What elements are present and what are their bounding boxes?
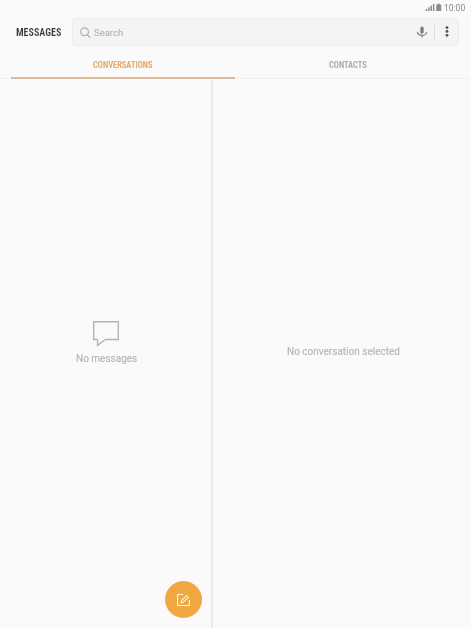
button[interactable]: Search bbox=[72, 18, 459, 46]
button[interactable]: More options bbox=[435, 18, 459, 46]
button[interactable]: New message bbox=[165, 581, 202, 618]
staticText: 10:00 bbox=[444, 3, 466, 13]
button[interactable]: Voice search bbox=[409, 18, 434, 46]
staticText: CONTACTS bbox=[329, 60, 367, 70]
button[interactable]: CONTACTS bbox=[235, 48, 471, 78]
staticText: Search bbox=[94, 27, 124, 38]
staticText: No messages bbox=[76, 353, 138, 365]
staticText: MESSAGES bbox=[16, 27, 62, 39]
staticText: No conversation selected bbox=[287, 346, 400, 358]
button[interactable]: CONVERSATIONS bbox=[0, 48, 235, 78]
staticText: CONVERSATIONS bbox=[93, 60, 153, 70]
